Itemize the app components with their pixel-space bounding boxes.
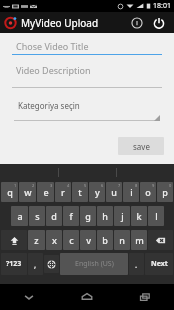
button[interactable]: v <box>80 230 96 250</box>
staticText: q <box>7 186 13 198</box>
staticText: 18:01 <box>153 1 171 11</box>
button[interactable]: z <box>28 230 45 250</box>
button[interactable]: . <box>129 253 144 275</box>
staticText: 6 <box>101 183 104 188</box>
button[interactable]: English (US) <box>60 253 128 275</box>
button[interactable]: s <box>29 206 45 226</box>
button[interactable]: b <box>97 230 113 250</box>
button[interactable]: i <box>123 182 139 202</box>
button[interactable]: Chose Video Title <box>12 40 162 55</box>
staticText: 1 <box>14 183 17 188</box>
staticText: 0 <box>169 183 172 188</box>
button[interactable]: a <box>11 206 28 226</box>
button[interactable]: Backspace <box>148 230 173 250</box>
button[interactable]: h <box>97 206 113 226</box>
staticText: e <box>43 186 49 198</box>
button[interactable]: w <box>19 182 36 202</box>
staticText: d <box>51 210 57 222</box>
staticText: t <box>78 186 82 198</box>
button[interactable]: t <box>72 182 88 202</box>
staticText: k <box>136 210 142 222</box>
staticText: r <box>61 186 65 198</box>
button[interactable]: r <box>55 182 71 202</box>
staticText: English (US) <box>75 259 114 269</box>
button[interactable]: j <box>114 206 130 226</box>
button[interactable]: q <box>1 182 18 202</box>
staticText: 4 <box>67 183 70 188</box>
button[interactable]: p <box>157 182 173 202</box>
button[interactable]: ?123 <box>1 253 27 275</box>
button[interactable]: Home <box>58 284 116 310</box>
button[interactable]: e <box>37 182 54 202</box>
staticText: MyVideo Upload <box>21 16 99 30</box>
button[interactable]: c <box>63 230 79 250</box>
staticText: 9 <box>152 183 155 188</box>
staticText: h <box>102 210 108 222</box>
button[interactable]: n <box>114 230 130 250</box>
button[interactable]: Shift <box>1 230 27 250</box>
staticText: , <box>34 259 37 270</box>
staticText: x <box>52 234 57 246</box>
staticText: Video Description <box>16 64 91 76</box>
staticText: 8 <box>135 183 138 188</box>
button[interactable]: save <box>118 137 164 155</box>
button[interactable]: f <box>63 206 79 226</box>
staticText: 5 <box>84 183 87 188</box>
button[interactable]: Hide keyboard <box>0 284 58 310</box>
staticText: v <box>86 234 91 246</box>
button[interactable]: , <box>28 253 43 275</box>
button[interactable]: Kategoriya seçin <box>14 100 160 121</box>
button[interactable]: u <box>106 182 122 202</box>
staticText: . <box>135 259 138 270</box>
staticText: f <box>69 210 73 222</box>
staticText: Kategoriya seçin <box>18 100 80 111</box>
button[interactable]: o <box>140 182 156 202</box>
button[interactable]: m <box>131 230 147 250</box>
staticText: y <box>95 186 100 198</box>
staticText: a <box>17 210 23 222</box>
button[interactable]: l <box>148 206 164 226</box>
staticText: w <box>24 186 32 198</box>
staticText: 7 <box>118 183 121 188</box>
staticText: 3 <box>50 183 53 188</box>
staticText: 2 <box>32 183 35 188</box>
button[interactable]: g <box>80 206 96 226</box>
staticText: save <box>133 141 150 152</box>
staticText: Chose Video Title <box>16 40 89 52</box>
staticText: b <box>102 234 108 246</box>
staticText: l <box>155 210 158 222</box>
button[interactable]: Language <box>44 255 59 273</box>
button[interactable]: k <box>131 206 147 226</box>
staticText: u <box>111 186 117 198</box>
staticText: z <box>34 234 39 246</box>
button[interactable]: Info <box>126 12 148 33</box>
staticText: j <box>121 210 124 222</box>
staticText: o <box>145 186 151 198</box>
button[interactable]: d <box>46 206 62 226</box>
button[interactable]: Power <box>148 12 170 33</box>
button[interactable]: Video Description <box>12 64 162 88</box>
staticText: g <box>85 210 91 222</box>
staticText: p <box>162 186 168 198</box>
button[interactable]: Recent apps <box>116 284 174 310</box>
staticText: n <box>119 234 125 246</box>
button[interactable]: y <box>89 182 105 202</box>
staticText: Next <box>151 259 168 269</box>
staticText: s <box>35 210 40 222</box>
button[interactable]: x <box>46 230 62 250</box>
staticText: c <box>69 234 74 246</box>
staticText: m <box>135 234 144 246</box>
staticText: ?123 <box>6 259 22 269</box>
button[interactable]: Next <box>145 253 173 275</box>
staticText: i <box>130 186 133 198</box>
